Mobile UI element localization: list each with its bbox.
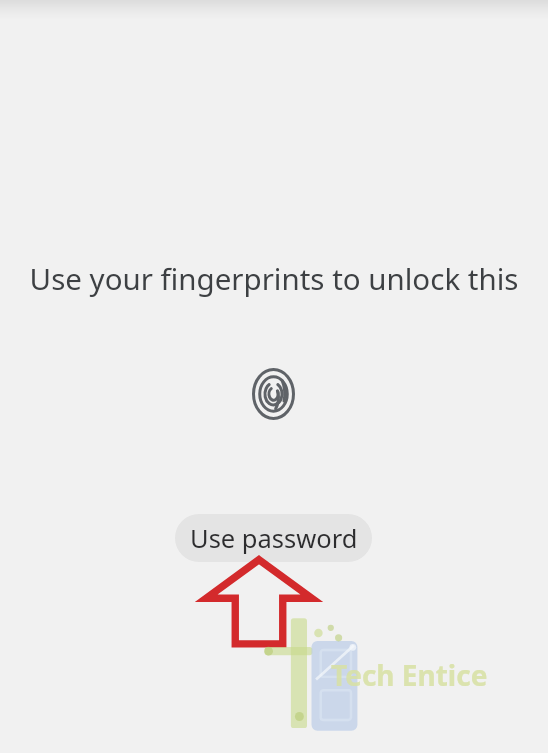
other: Fingerprint sensor [252, 368, 295, 420]
button[interactable]: Use password [175, 514, 372, 562]
staticText: Use password [190, 521, 358, 556]
staticText: Tech Entice [331, 656, 488, 694]
staticText: Use your fingerprints to unlock this not… [24, 258, 524, 300]
